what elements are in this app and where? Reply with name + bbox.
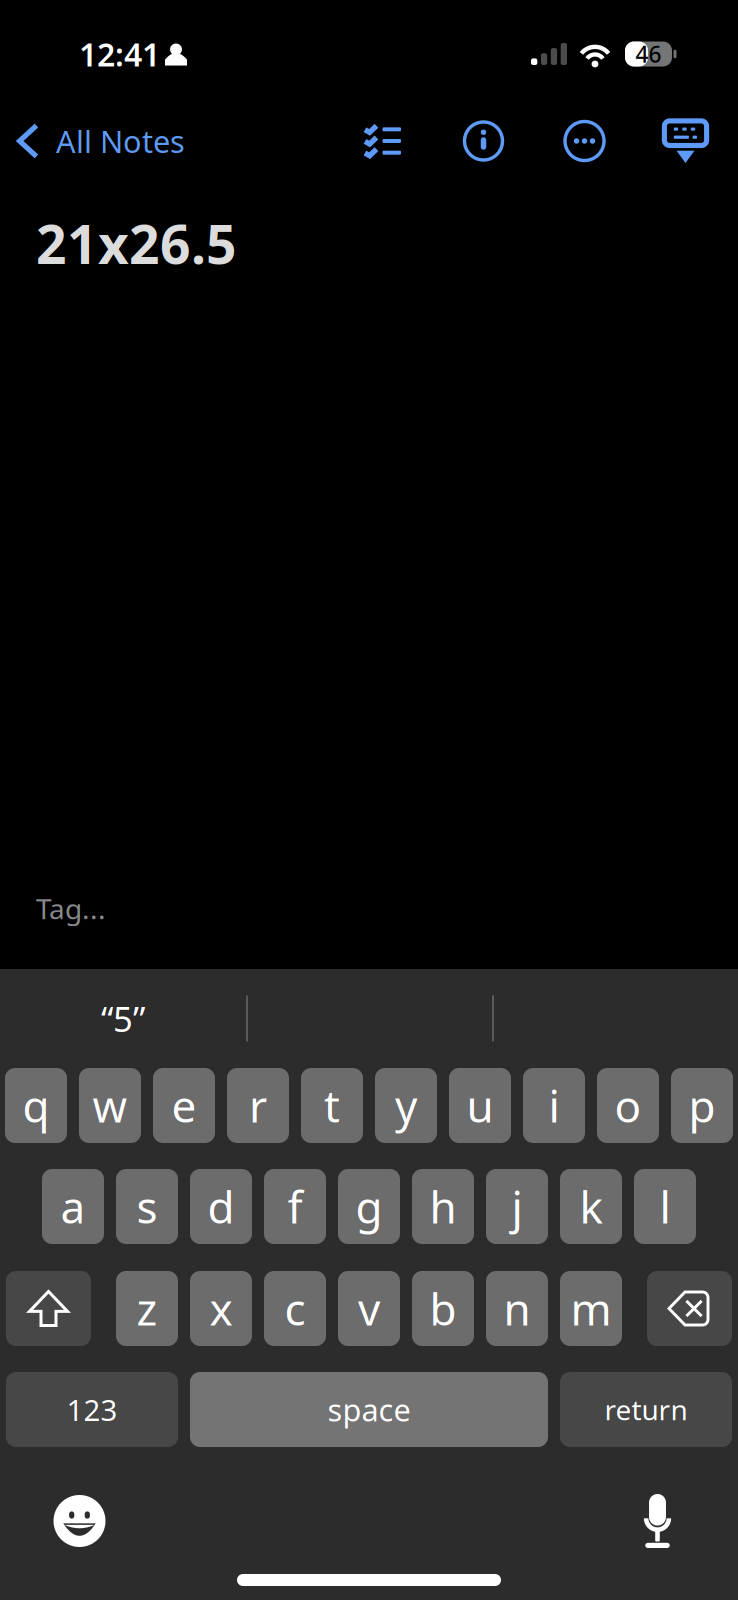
staticText: y	[395, 1076, 417, 1135]
staticText: e	[171, 1076, 196, 1135]
staticText: b	[429, 1279, 456, 1338]
button[interactable]: f	[264, 1169, 326, 1244]
staticText: j	[511, 1177, 522, 1236]
button[interactable]: a	[42, 1169, 104, 1244]
button[interactable]: q	[5, 1068, 67, 1143]
button[interactable]: Dictate	[608, 1485, 707, 1557]
staticText: o	[614, 1076, 641, 1135]
button[interactable]: b	[412, 1271, 474, 1346]
button[interactable]: s	[116, 1169, 178, 1244]
button[interactable]: k	[560, 1169, 622, 1244]
staticText: g	[355, 1177, 382, 1236]
staticText: p	[688, 1076, 715, 1135]
button[interactable]: 123	[6, 1372, 178, 1447]
button[interactable]: space	[190, 1372, 548, 1447]
staticText: n	[503, 1279, 530, 1338]
staticText: d	[207, 1177, 234, 1236]
button[interactable]: g	[338, 1169, 400, 1244]
button[interactable]: l	[634, 1169, 696, 1244]
button[interactable]: Checklist	[332, 108, 433, 174]
staticText: w	[92, 1076, 127, 1135]
staticText: h	[429, 1177, 456, 1236]
staticText: 21x26.5	[36, 208, 237, 279]
staticText: c	[284, 1279, 305, 1338]
staticText: “5”	[101, 995, 145, 1041]
button[interactable]: More	[534, 108, 635, 174]
button[interactable]: Info	[433, 108, 534, 174]
button[interactable]: return	[560, 1372, 732, 1447]
staticText: i	[548, 1076, 559, 1135]
staticText: r	[249, 1076, 267, 1135]
staticText: s	[136, 1177, 157, 1236]
staticText: Tag...	[36, 890, 106, 927]
staticText: 12:41	[79, 33, 160, 75]
button[interactable]: h	[412, 1169, 474, 1244]
button[interactable]: m	[560, 1271, 622, 1346]
button[interactable]: d	[190, 1169, 252, 1244]
button[interactable]: z	[116, 1271, 178, 1346]
staticText: a	[60, 1177, 85, 1236]
staticText: l	[659, 1177, 670, 1236]
staticText: u	[466, 1076, 493, 1135]
button[interactable]: r	[227, 1068, 289, 1143]
staticText: t	[324, 1076, 340, 1135]
button[interactable]: w	[79, 1068, 141, 1143]
staticText: 46	[635, 39, 661, 69]
button[interactable]: c	[264, 1271, 326, 1346]
button[interactable]: o	[597, 1068, 659, 1143]
button[interactable]: v	[338, 1271, 400, 1346]
staticText: q	[22, 1076, 49, 1135]
button[interactable]: u	[449, 1068, 511, 1143]
button[interactable]: e	[153, 1068, 215, 1143]
button[interactable]: Shift	[6, 1271, 91, 1346]
button[interactable]: t	[301, 1068, 363, 1143]
button[interactable]: y	[375, 1068, 437, 1143]
button[interactable]: x	[190, 1271, 252, 1346]
staticText: m	[570, 1279, 611, 1338]
button[interactable]: j	[486, 1169, 548, 1244]
staticText: 123	[66, 1390, 117, 1429]
staticText: v	[358, 1279, 380, 1338]
button[interactable]: Emoji	[30, 1485, 129, 1557]
staticText: return	[604, 1391, 687, 1428]
staticText: All Notes	[56, 121, 185, 161]
staticText: k	[579, 1177, 602, 1236]
staticText: x	[209, 1279, 232, 1338]
button[interactable]: Hide keyboard	[635, 108, 736, 174]
staticText: z	[136, 1279, 157, 1338]
staticText: f	[287, 1177, 302, 1236]
button[interactable]: Delete	[647, 1271, 732, 1346]
button[interactable]: n	[486, 1271, 548, 1346]
button[interactable]: i	[523, 1068, 585, 1143]
staticText: space	[327, 1389, 410, 1430]
button[interactable]: p	[671, 1068, 733, 1143]
button[interactable]: All Notes	[0, 112, 185, 170]
